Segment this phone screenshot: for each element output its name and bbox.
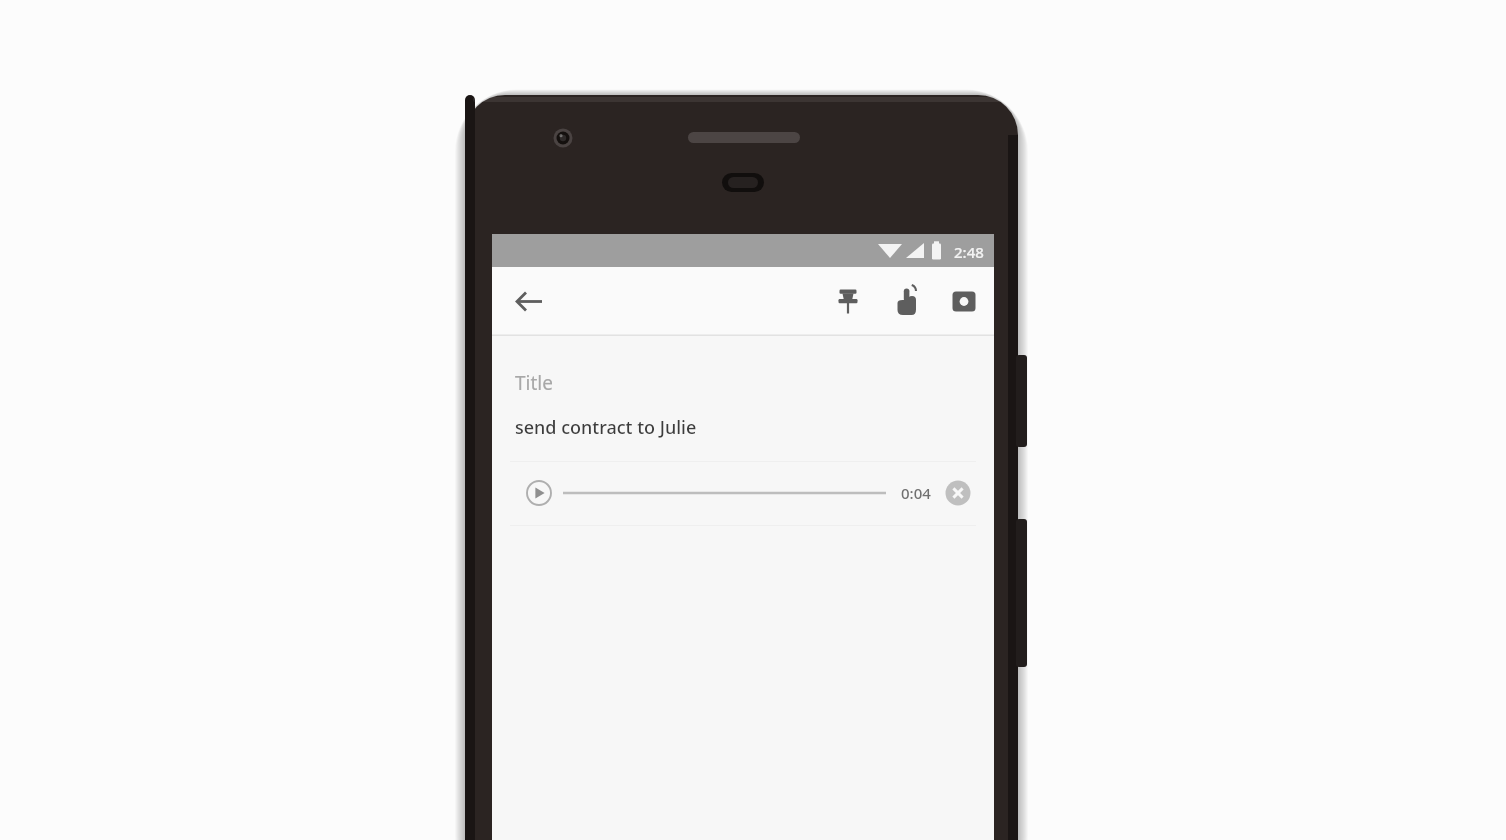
button[interactable]: Title [510,362,980,406]
button[interactable]: Back [502,276,558,328]
staticText: send contract to Julie [515,415,697,440]
button[interactable]: Pin note [822,276,874,328]
staticText: 0:04 [901,483,931,503]
button[interactable]: Handwriting [880,276,932,328]
button[interactable]: Play recording [523,477,555,509]
staticText: 2:48 [954,242,984,262]
button[interactable]: Note body [510,406,980,450]
button[interactable]: Record [938,276,990,328]
button[interactable]: Delete recording [942,477,974,509]
staticText: Title [515,370,553,396]
